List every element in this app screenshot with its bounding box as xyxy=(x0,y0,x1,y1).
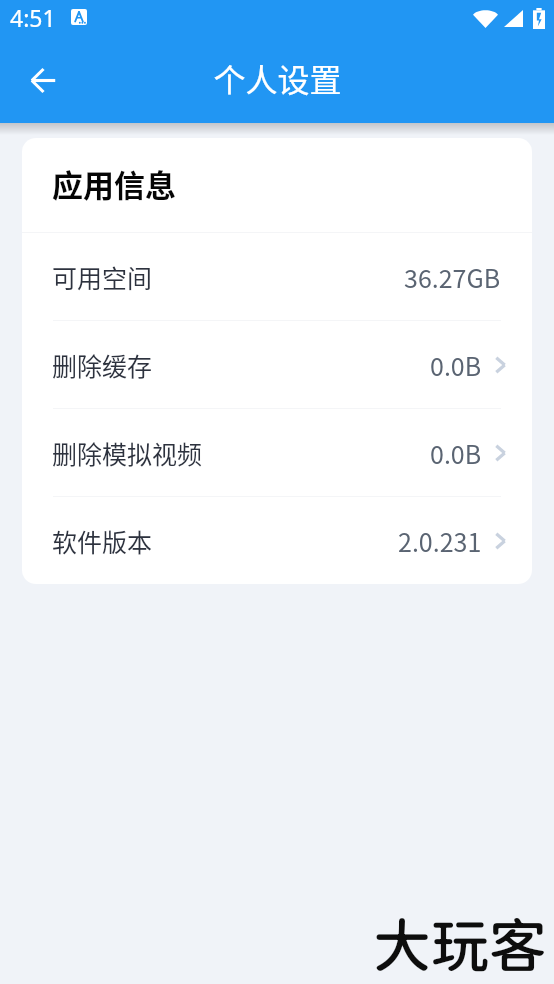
other: Battery charging xyxy=(533,8,545,29)
staticText: 大玩客 xyxy=(373,911,548,979)
staticText: 0.0B xyxy=(430,347,482,383)
button[interactable]: 删除模拟视频 xyxy=(22,409,532,496)
other: Input method xyxy=(71,9,87,25)
button[interactable]: 软件版本 xyxy=(22,497,532,584)
staticText: 删除缓存 xyxy=(52,347,153,383)
other: Wi-Fi signal xyxy=(473,9,498,28)
staticText: 2.0.231 xyxy=(398,523,482,559)
staticText: 个人设置 xyxy=(213,55,342,101)
staticText: 36.27GB xyxy=(404,259,501,295)
button[interactable]: 可用空间 xyxy=(22,233,532,320)
button[interactable]: Back xyxy=(19,56,67,104)
staticText: 0.0B xyxy=(430,435,482,471)
staticText: 可用空间 xyxy=(52,259,153,295)
button[interactable]: 删除缓存 xyxy=(22,321,532,408)
staticText: 删除模拟视频 xyxy=(52,435,203,471)
staticText: 应用信息 xyxy=(52,161,176,206)
other: Mobile signal xyxy=(504,10,523,27)
staticText: 软件版本 xyxy=(52,523,153,559)
staticText: 4:51 xyxy=(10,2,56,33)
